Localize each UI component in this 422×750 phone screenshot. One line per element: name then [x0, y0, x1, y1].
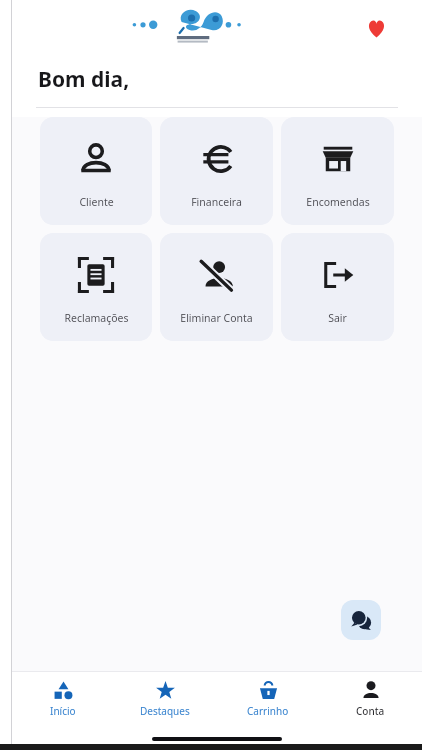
staticText: Financeira	[191, 195, 242, 209]
button[interactable]: Cliente	[40, 117, 152, 225]
staticText: Início	[50, 704, 76, 718]
button[interactable]: Início	[12, 672, 114, 724]
button[interactable]: Financeira	[160, 117, 273, 225]
button[interactable]: Carrinho	[216, 672, 319, 724]
staticText: Conta	[356, 704, 385, 718]
button[interactable]: Conta	[319, 672, 422, 724]
button[interactable]: Destaques	[114, 672, 216, 724]
staticText: Reclamações	[64, 311, 129, 325]
button[interactable]: Eliminar Conta	[160, 233, 273, 341]
button[interactable]: Encomendas	[281, 117, 394, 225]
staticText: Encomendas	[306, 195, 370, 209]
button[interactable]: Reclamações	[40, 233, 152, 341]
staticText: Eliminar Conta	[180, 311, 253, 325]
button[interactable]: Sair	[281, 233, 394, 341]
staticText: Sair	[328, 311, 347, 325]
button[interactable]: Chat	[341, 600, 381, 640]
staticText: Carrinho	[247, 704, 289, 718]
staticText: Bom dia,	[38, 65, 130, 94]
button[interactable]: Favoritos	[360, 12, 392, 44]
staticText: Cliente	[79, 195, 114, 209]
staticText: Destaques	[140, 704, 190, 718]
